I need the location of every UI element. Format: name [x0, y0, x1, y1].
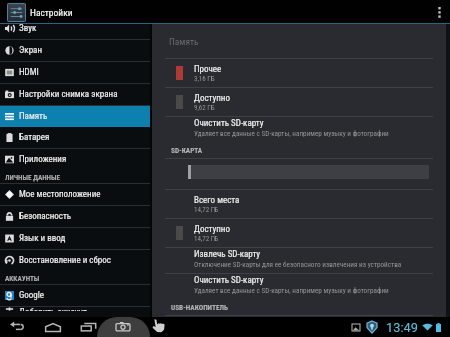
button[interactable]: Screenshot — [97, 317, 150, 337]
button[interactable]: Язык и ввод — [0, 228, 150, 249]
button[interactable]: Back — [2, 317, 32, 337]
staticText: Настройки — [30, 7, 73, 18]
button[interactable]: Добавить аккаунт — [0, 307, 150, 311]
staticText: Приложения — [19, 154, 67, 165]
button[interactable]: Извлечь SD-карту — [152, 248, 450, 273]
staticText: Память — [19, 111, 48, 122]
staticText: Батарея — [19, 132, 50, 143]
button[interactable]: Очистить SD-карту — [152, 274, 450, 299]
button[interactable]: Экран — [0, 40, 150, 61]
button[interactable]: More options — [428, 0, 450, 24]
staticText: Очистить SD-карту — [194, 275, 264, 286]
staticText: Язык и ввод — [19, 233, 66, 244]
staticText: Звук — [19, 24, 37, 34]
button[interactable]: Google — [0, 285, 150, 306]
staticText: Извлечь SD-карту — [194, 249, 261, 260]
button[interactable]: Звук — [0, 24, 150, 39]
staticText: Доступно — [194, 93, 230, 104]
staticText: Google — [19, 290, 45, 301]
staticText: Всего места — [194, 195, 240, 206]
staticText: Удаляет все данные с SD-карты, например … — [194, 129, 389, 137]
button[interactable]: Доступно — [152, 219, 450, 247]
staticText: 9,62 ГБ — [194, 104, 215, 112]
button[interactable]: Память — [0, 106, 150, 127]
button[interactable]: Батарея — [0, 127, 150, 148]
staticText: Добавить аккаунт — [19, 307, 87, 311]
staticText: 14,72 ГБ — [194, 235, 219, 243]
staticText: SD-КАРТА — [171, 146, 203, 155]
staticText: Отключение SD-карты для ее безопасного и… — [194, 260, 402, 268]
button[interactable]: Recent apps — [73, 317, 103, 337]
staticText: 3,16 ГБ — [194, 75, 215, 83]
staticText: Восстановление и сброс — [19, 255, 111, 266]
button[interactable]: Безопасность — [0, 206, 150, 227]
staticText: Мое местоположение — [19, 189, 101, 200]
button[interactable]: Доступно — [152, 88, 450, 116]
button[interactable]: Мое местоположение — [0, 184, 150, 205]
staticText: Память — [169, 36, 199, 47]
button[interactable]: Очистить SD-карту — [152, 117, 450, 142]
button[interactable]: HDMI — [0, 62, 150, 83]
button[interactable]: Настройки снимка экрана — [0, 84, 150, 105]
staticText: АККАУНТЫ — [5, 274, 40, 282]
staticText: Доступно — [194, 224, 230, 235]
staticText: ЛИЧНЫЕ ДАННЫЕ — [5, 173, 61, 181]
button[interactable]: Home — [38, 317, 68, 337]
button[interactable]: Прочее — [152, 59, 450, 87]
button[interactable]: Всего места — [152, 190, 450, 218]
staticText: 13:49 — [386, 320, 418, 335]
staticText: Прочее — [194, 64, 222, 75]
staticText: Настройки снимка экрана — [19, 89, 118, 100]
button[interactable]: Приложения — [0, 149, 150, 170]
staticText: 14,72 ГБ — [194, 206, 219, 214]
staticText: Безопасность — [19, 211, 72, 222]
staticText: Очистить SD-карту — [194, 118, 264, 129]
staticText: Экран — [19, 45, 42, 56]
staticText: USB-НАКОПИТЕЛЬ — [171, 303, 228, 312]
button[interactable]: Восстановление и сброс — [0, 250, 150, 271]
staticText: HDMI — [19, 67, 39, 78]
staticText: Удаляет все данные с SD-карты, например … — [194, 286, 389, 294]
